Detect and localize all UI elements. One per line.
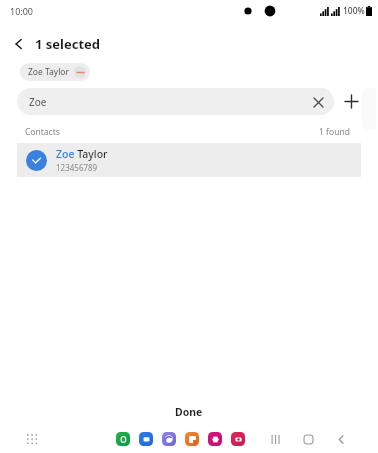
button[interactable]: Add recipient xyxy=(338,88,364,114)
button[interactable]: Messages xyxy=(139,432,153,446)
button[interactable]: Apps xyxy=(22,429,42,449)
staticText: 1 selected xyxy=(35,35,101,53)
button[interactable]: Internet xyxy=(162,432,176,446)
button[interactable]: Remove Zoe Taylor xyxy=(74,66,86,78)
staticText: Zoe Taylor xyxy=(28,66,70,78)
staticText: Done xyxy=(175,405,203,419)
staticText: Zoe xyxy=(29,95,308,109)
staticText: Contacts xyxy=(25,126,60,138)
button[interactable]: Notes xyxy=(185,432,199,446)
button[interactable]: Done xyxy=(0,399,378,425)
button[interactable]: Back xyxy=(330,428,352,450)
button[interactable]: Zoe Taylor xyxy=(20,63,90,81)
button[interactable]: Phone xyxy=(116,432,130,446)
staticText: 10:00 xyxy=(10,5,34,17)
button[interactable]: Camera xyxy=(231,432,245,446)
button[interactable]: Zoe xyxy=(17,88,334,115)
button[interactable]: Zoe Taylor xyxy=(17,143,361,177)
button[interactable]: Recents xyxy=(264,428,286,450)
button[interactable]: Gallery xyxy=(208,432,222,446)
staticText: 100% xyxy=(343,5,365,17)
button[interactable]: Home xyxy=(297,428,319,450)
staticText: Zoe Taylor xyxy=(56,147,108,161)
staticText: 123456789 xyxy=(56,162,98,173)
staticText: 1 found xyxy=(319,126,350,138)
button[interactable]: Back xyxy=(6,31,32,57)
button[interactable]: Clear search xyxy=(308,92,328,112)
